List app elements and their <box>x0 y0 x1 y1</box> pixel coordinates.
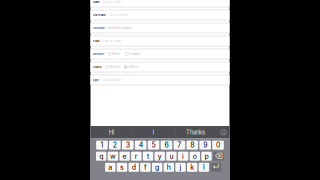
staticText: 1 <box>100 141 103 149</box>
button[interactable]: p <box>201 152 212 161</box>
button[interactable]: u <box>166 152 177 161</box>
staticText: Female <box>129 52 140 56</box>
staticText: 9 <box>203 141 207 149</box>
staticText: s <box>120 163 124 171</box>
button[interactable]: Thanks <box>175 126 216 138</box>
staticText: Thanks <box>186 129 205 136</box>
button[interactable]: 6 <box>161 141 172 150</box>
staticText: p <box>204 152 208 160</box>
button[interactable]: 9 <box>199 141 211 150</box>
staticText: Tap to enter <box>103 0 122 4</box>
staticText: Status: <box>93 65 102 69</box>
button[interactable]: a <box>105 163 115 172</box>
staticText: 7 <box>177 141 181 149</box>
button[interactable]: 8 <box>186 141 198 150</box>
staticText: i <box>182 152 184 160</box>
button[interactable]: j <box>175 163 186 172</box>
button[interactable]: 5 <box>148 141 159 150</box>
button[interactable]: 0 <box>212 141 224 150</box>
staticText: r <box>135 152 138 160</box>
staticText: j <box>179 163 181 171</box>
button[interactable]: y <box>154 152 165 161</box>
button[interactable]: 7 <box>174 141 185 150</box>
button[interactable]: Online <box>105 65 119 69</box>
button[interactable]: ⌫ <box>213 152 224 161</box>
button[interactable]: Offline <box>124 65 138 69</box>
button[interactable]: Dismiss suggestions <box>217 126 229 138</box>
staticText: 8 <box>190 141 194 149</box>
staticText: Username: <box>93 13 107 17</box>
staticText: Tap to enter <box>103 39 122 43</box>
staticText: 5 <box>152 141 156 149</box>
button[interactable]: 3 <box>122 141 134 150</box>
staticText: q <box>99 152 103 160</box>
staticText: Male <box>112 52 120 56</box>
staticText: u <box>169 152 173 160</box>
staticText: k <box>190 163 194 171</box>
button[interactable]: Male <box>108 52 120 56</box>
staticText: d <box>132 163 136 171</box>
staticText: g <box>155 163 159 171</box>
staticText: 2 <box>113 141 117 149</box>
staticText: I <box>152 129 154 136</box>
button[interactable]: Username: <box>90 10 229 20</box>
staticText: 4 <box>139 141 143 149</box>
button[interactable]: t <box>143 152 153 161</box>
staticText: ↵ <box>212 163 219 171</box>
staticText: Online <box>109 65 119 69</box>
staticText: o <box>193 152 197 160</box>
staticText: y <box>158 152 162 160</box>
button[interactable]: I <box>133 126 174 138</box>
button[interactable]: i <box>178 152 188 161</box>
staticText: x <box>222 129 224 135</box>
button[interactable]: e <box>119 152 130 161</box>
button[interactable]: d <box>128 163 139 172</box>
staticText: e <box>123 152 127 160</box>
button[interactable]: w <box>108 152 118 161</box>
button[interactable]: Name: <box>90 0 229 7</box>
staticText: t <box>147 152 149 160</box>
staticText: Hi <box>109 129 114 136</box>
button[interactable]: 2 <box>109 141 121 150</box>
button[interactable]: State: <box>90 36 229 46</box>
staticText: Tap to select <box>102 78 122 82</box>
button[interactable]: s <box>117 163 127 172</box>
staticText: Gender: <box>93 52 105 56</box>
staticText: a <box>108 163 112 171</box>
staticText: f <box>144 163 147 171</box>
button[interactable]: Hi <box>90 126 132 138</box>
staticText: Country: <box>93 26 106 30</box>
button[interactable]: 1 <box>96 141 108 150</box>
button[interactable]: f <box>140 163 151 172</box>
button[interactable]: o <box>190 152 200 161</box>
button[interactable]: Age: <box>90 75 229 85</box>
button[interactable]: r <box>131 152 141 161</box>
button[interactable]: q <box>96 152 106 161</box>
staticText: w <box>110 152 116 160</box>
button[interactable]: Female <box>125 52 140 56</box>
staticText: Tap to enter <box>109 13 128 17</box>
staticText: 0 <box>216 141 220 149</box>
staticText: h <box>167 163 171 171</box>
staticText: Age: <box>93 78 100 82</box>
staticText: l <box>203 163 205 171</box>
button[interactable]: g <box>152 163 162 172</box>
staticText: 3 <box>126 141 130 149</box>
staticText: Offline <box>128 65 138 69</box>
staticText: ⌫ <box>214 152 222 160</box>
staticText: State: <box>93 39 101 43</box>
button[interactable]: ↵ <box>210 163 221 172</box>
button[interactable]: l <box>199 163 209 172</box>
staticText: 6 <box>164 141 168 149</box>
staticText: United Kingdom <box>108 26 132 30</box>
staticText: Name: <box>93 0 101 4</box>
button[interactable]: k <box>187 163 197 172</box>
button[interactable]: 4 <box>135 141 146 150</box>
button[interactable]: Country: <box>90 23 229 33</box>
button[interactable]: h <box>164 163 174 172</box>
